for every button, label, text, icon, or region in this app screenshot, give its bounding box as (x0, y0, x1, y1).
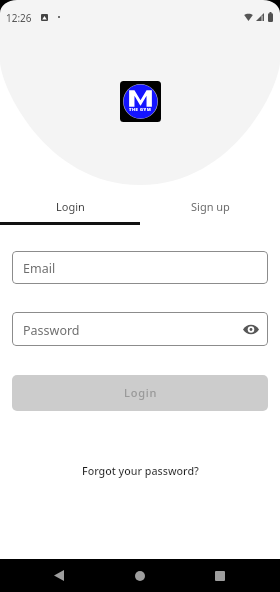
button[interactable]: Home (119, 559, 161, 592)
button[interactable]: Login (12, 375, 268, 411)
staticText: Login (56, 199, 85, 214)
button[interactable]: Recent apps (199, 559, 241, 592)
button[interactable]: Forgot your password? (0, 460, 280, 482)
staticText: Forgot your password? (82, 464, 199, 479)
button[interactable]: Password (12, 312, 268, 346)
button[interactable]: Sign up (140, 190, 280, 222)
staticText: Sign up (191, 199, 230, 214)
button[interactable]: Email (12, 251, 268, 284)
staticText: 12:26 (6, 11, 32, 25)
staticText: Password (23, 322, 80, 339)
button[interactable]: Login (0, 190, 140, 222)
staticText: Email (23, 260, 56, 277)
button[interactable]: Back (38, 559, 80, 592)
staticText: THE GYM (129, 107, 152, 113)
staticText: Login (124, 385, 158, 400)
button[interactable]: Show password (240, 318, 262, 340)
